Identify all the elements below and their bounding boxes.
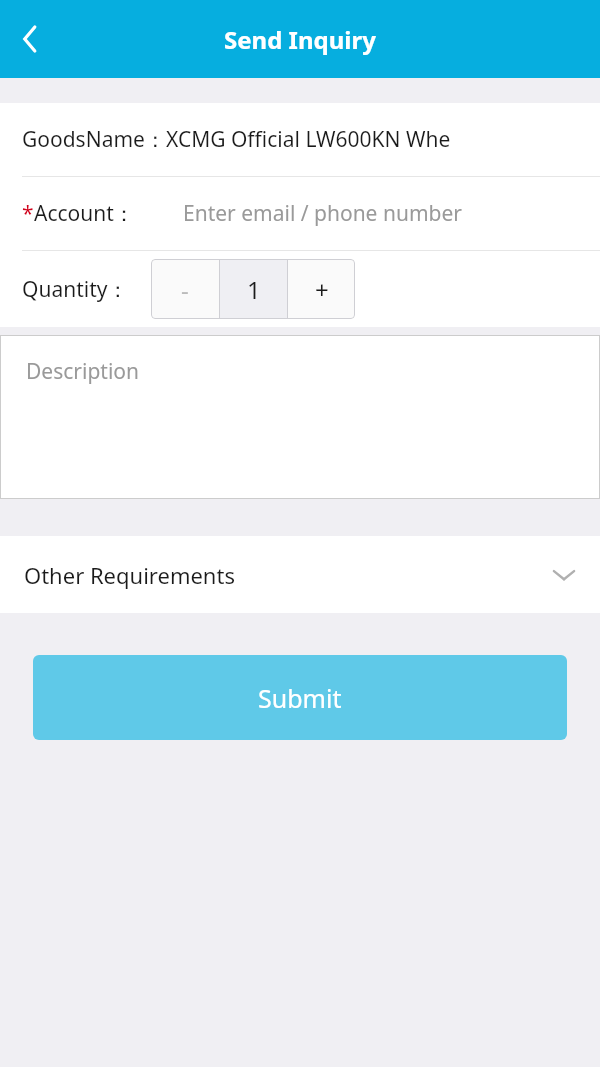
staticText: Account：	[34, 199, 135, 228]
staticText: Quantity：	[22, 275, 129, 304]
button[interactable]: 1	[220, 259, 287, 319]
staticText: Enter email / phone number	[183, 199, 462, 228]
button[interactable]: Submit	[33, 655, 567, 740]
staticText: 1	[247, 273, 261, 306]
staticText: Other Requirements	[24, 560, 235, 590]
button[interactable]: Back	[0, 0, 60, 78]
button[interactable]: -	[151, 259, 219, 319]
staticText: GoodsName：	[22, 125, 166, 154]
staticText: Send Inquiry	[224, 23, 376, 56]
button[interactable]: Other Requirements	[0, 536, 600, 613]
staticText: *	[22, 199, 34, 228]
button[interactable]: GoodsName：	[0, 103, 600, 176]
staticText: Submit	[258, 681, 342, 715]
staticText: -	[181, 273, 189, 306]
button[interactable]: *	[0, 177, 600, 250]
button[interactable]: +	[288, 259, 355, 319]
staticText: +	[315, 273, 329, 306]
staticText: XCMG Official LW600KN Whe	[166, 125, 451, 154]
button[interactable]: Description	[0, 335, 600, 499]
staticText: Description	[26, 357, 140, 386]
